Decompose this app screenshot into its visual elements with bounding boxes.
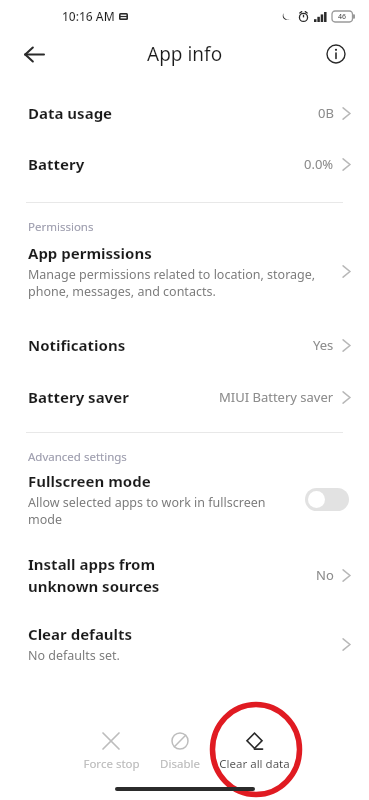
staticText: unknown sources: [28, 576, 160, 596]
button[interactable]: Back: [16, 36, 52, 72]
button[interactable]: Clear all data: [213, 728, 295, 774]
staticText: Clear defaults: [28, 624, 133, 644]
staticText: Install apps from: [28, 554, 156, 574]
button[interactable]: App permissions: [0, 235, 369, 308]
staticText: Yes: [313, 336, 334, 354]
staticText: Allow selected apps to work in fullscree…: [28, 494, 266, 528]
staticText: 46: [338, 12, 347, 22]
staticText: Notifications: [28, 335, 126, 355]
staticText: Data usage: [28, 103, 113, 123]
button[interactable]: Fullscreen mode: [0, 465, 369, 534]
staticText: Battery saver: [28, 387, 129, 407]
staticText: App permissions: [28, 243, 152, 263]
button[interactable]: Data usage: [0, 88, 369, 138]
button[interactable]: Clear defaults: [0, 616, 369, 672]
button[interactable]: Install apps from: [0, 548, 369, 602]
button[interactable]: Notifications: [0, 324, 369, 366]
staticText: 0.0%: [304, 155, 334, 173]
staticText: Manage permissions related to location, …: [28, 266, 316, 300]
button[interactable]: Fullscreen mode toggle: [305, 488, 349, 511]
button[interactable]: Disable: [147, 728, 213, 774]
staticText: App info: [147, 41, 223, 67]
button[interactable]: Force stop: [75, 728, 147, 774]
staticText: Disable: [160, 756, 200, 772]
staticText: 0B: [318, 104, 334, 122]
staticText: Force stop: [83, 756, 140, 772]
button[interactable]: App details: [319, 37, 353, 71]
staticText: Fullscreen mode: [28, 471, 151, 491]
button[interactable]: Battery: [0, 138, 369, 190]
staticText: MIUI Battery saver: [219, 388, 334, 406]
staticText: 10:16 AM: [62, 8, 115, 24]
staticText: Advanced settings: [28, 449, 127, 465]
staticText: Clear all data: [219, 756, 290, 772]
staticText: Battery: [28, 154, 85, 174]
staticText: Permissions: [28, 219, 94, 235]
staticText: No: [316, 566, 334, 584]
button[interactable]: Battery saver: [0, 376, 369, 418]
staticText: No defaults set.: [28, 647, 120, 664]
